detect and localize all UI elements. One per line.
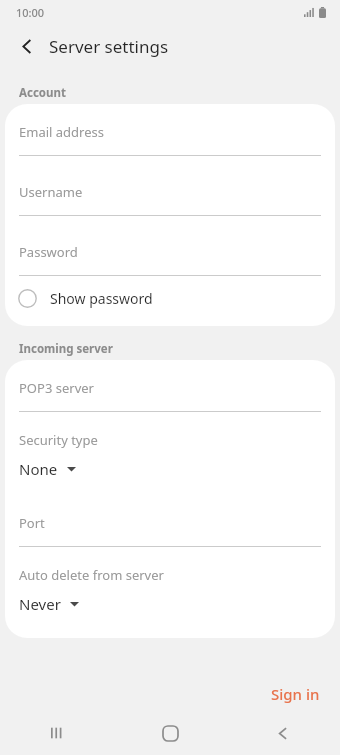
button[interactable]: POP3 server (5, 365, 335, 411)
staticText: Email address (19, 123, 104, 141)
staticText: POP3 server (19, 379, 94, 397)
button[interactable]: Password (5, 229, 335, 275)
button[interactable]: Port (5, 500, 335, 546)
staticText: Security type (19, 431, 98, 449)
button[interactable]: Home (114, 711, 227, 755)
button[interactable]: Recents (0, 711, 114, 755)
button[interactable]: Sign in (251, 677, 340, 711)
staticText: Show password (50, 289, 153, 308)
staticText: None (19, 459, 58, 479)
staticText: Server settings (49, 35, 169, 58)
button[interactable]: Security type (5, 425, 335, 483)
button[interactable]: Email address (5, 109, 335, 155)
button[interactable]: Show password (5, 276, 335, 320)
button[interactable]: Auto delete from server (5, 560, 335, 618)
button[interactable]: Username (5, 169, 335, 215)
staticText: Account (19, 85, 66, 101)
staticText: 10:00 (16, 5, 45, 20)
staticText: Port (19, 514, 45, 532)
staticText: Sign in (271, 684, 320, 704)
staticText: Password (19, 243, 78, 261)
button[interactable]: Back (6, 25, 48, 67)
staticText: Incoming server (19, 341, 113, 357)
staticText: Auto delete from server (19, 566, 164, 584)
button[interactable]: Back (227, 711, 340, 755)
staticText: Username (19, 183, 83, 201)
staticText: Never (19, 594, 61, 614)
